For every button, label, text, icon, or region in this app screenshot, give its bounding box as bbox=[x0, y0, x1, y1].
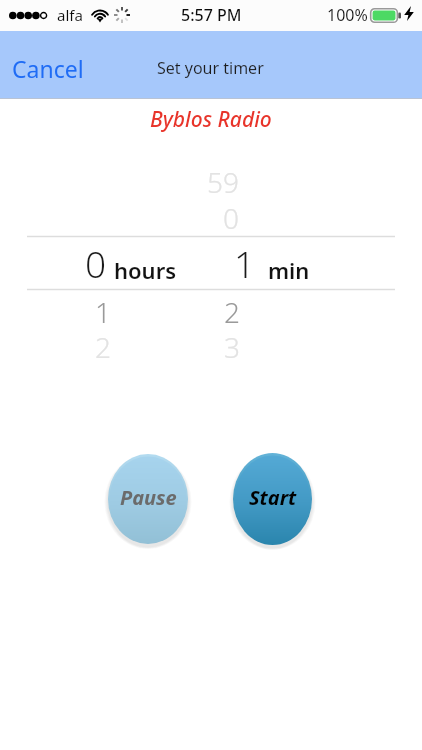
staticText: Byblos Radio bbox=[150, 105, 272, 134]
staticText: Set your timer bbox=[157, 57, 264, 79]
staticText: 59 bbox=[207, 163, 239, 201]
staticText: min bbox=[268, 255, 310, 285]
staticText: 2 bbox=[224, 293, 240, 331]
staticText: hours bbox=[114, 255, 177, 285]
staticText: Cancel bbox=[12, 53, 84, 84]
staticText: 5:57 PM bbox=[181, 4, 242, 26]
staticText: 1 bbox=[234, 238, 256, 288]
button[interactable]: Cancel bbox=[0, 47, 98, 90]
button[interactable]: Pause bbox=[108, 454, 188, 544]
staticText: 0 bbox=[223, 199, 239, 237]
staticText: Pause bbox=[120, 484, 177, 511]
staticText: 3 bbox=[224, 328, 240, 366]
staticText: 2 bbox=[95, 328, 111, 366]
staticText: alfa bbox=[57, 5, 83, 25]
staticText: 100% bbox=[327, 4, 368, 26]
button[interactable]: Start bbox=[233, 453, 312, 545]
staticText: 1 bbox=[95, 293, 111, 331]
staticText: 0 bbox=[85, 238, 107, 288]
staticText: Start bbox=[249, 484, 297, 511]
